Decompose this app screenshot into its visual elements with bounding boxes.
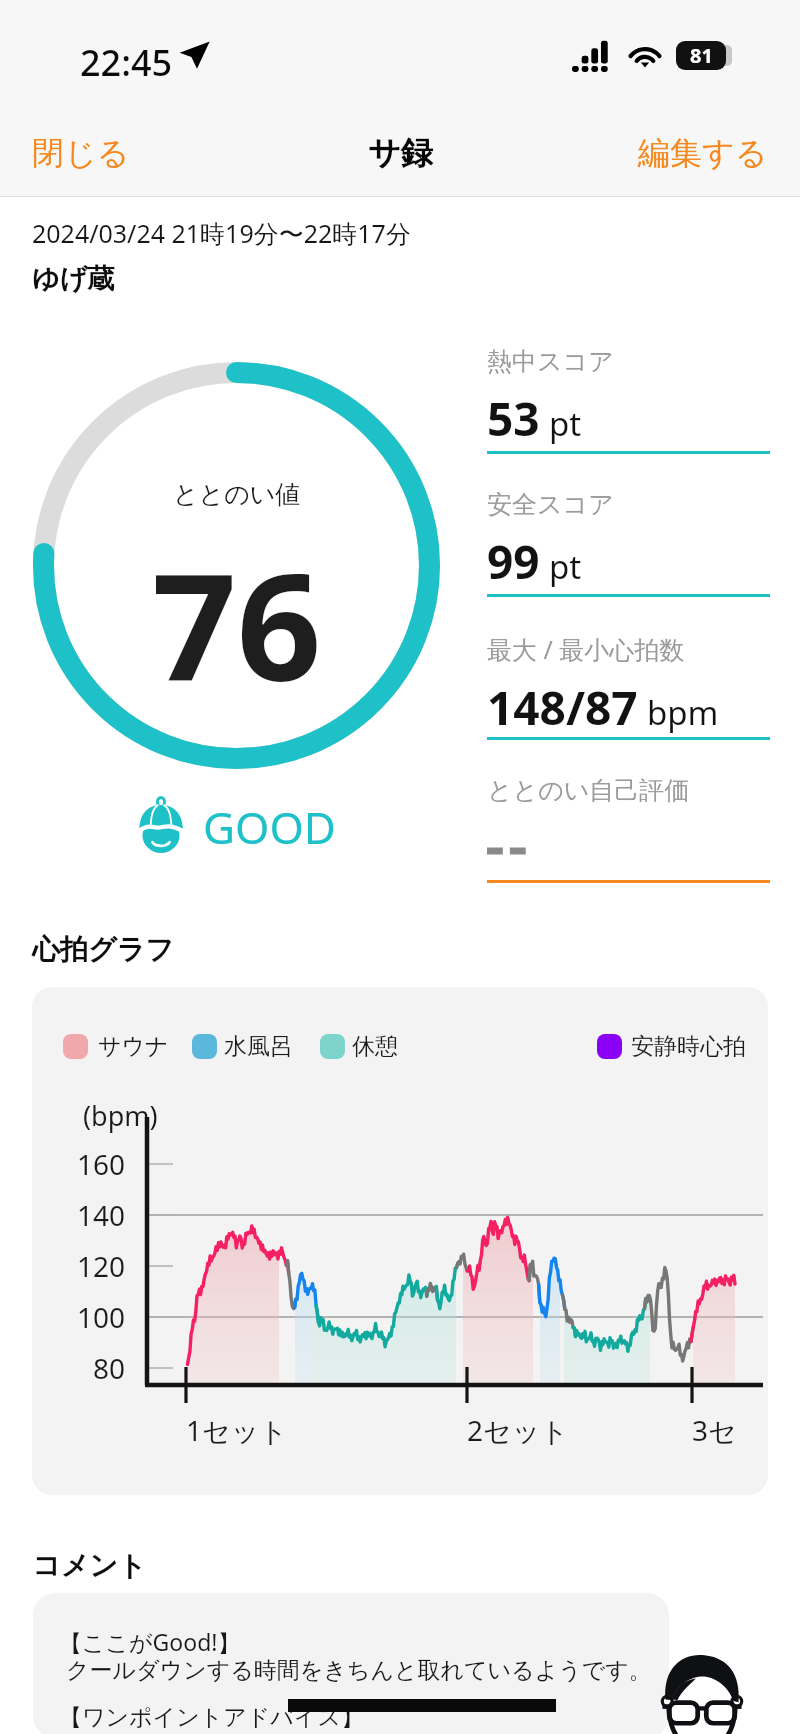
staticText: 99 [487, 530, 540, 593]
staticText: 【ワンポイントアドバイス】 [59, 1703, 364, 1732]
staticText: 最大 / 最小心拍数 [487, 632, 685, 666]
staticText: 水風呂 [224, 1032, 293, 1061]
button[interactable]: ととのい自己評価 [487, 775, 770, 883]
staticText: サウナ [98, 1032, 169, 1061]
staticText: 81 [690, 42, 713, 69]
staticText: 2セット [467, 1411, 569, 1449]
staticText: bpm [647, 690, 719, 735]
staticText: 3セ [692, 1411, 737, 1449]
staticText: 148/87 [487, 676, 638, 739]
staticText: pt [549, 401, 582, 446]
staticText: 閉じる [32, 133, 130, 173]
staticText: 【ここがGood!】 [59, 1626, 241, 1657]
staticText: 80 [93, 1349, 126, 1387]
staticText: 22:45 [80, 38, 173, 87]
staticText: 熱中スコア [487, 346, 614, 377]
staticText: GOOD [203, 797, 336, 857]
staticText: (bpm) [83, 1097, 158, 1134]
staticText: 安全スコア [487, 489, 614, 520]
staticText: 160 [77, 1145, 126, 1183]
staticText: ととのい自己評価 [487, 775, 690, 806]
button[interactable]: 閉じる [0, 117, 162, 189]
staticText: 安静時心拍 [631, 1032, 746, 1061]
staticText: 編集する [638, 133, 768, 173]
staticText: クールダウンする時間をきちんと取れているようです。 [66, 1656, 652, 1685]
staticText: 120 [77, 1247, 126, 1285]
button[interactable]: 編集する [606, 117, 800, 189]
staticText: 心拍グラフ [32, 932, 174, 967]
staticText: 76 [152, 523, 322, 725]
staticText: 53 [487, 387, 540, 450]
staticText: サ録 [368, 133, 433, 173]
button[interactable]: 熱中スコア [487, 346, 770, 454]
staticText: pt [549, 544, 582, 589]
staticText: 休憩 [352, 1032, 398, 1061]
button[interactable]: 最大 / 最小心拍数 [487, 632, 770, 740]
staticText: 2024/03/24 21時19分〜22時17分 [32, 216, 411, 250]
staticText: 1セット [186, 1411, 288, 1449]
button[interactable]: 安全スコア [487, 489, 770, 597]
staticText: ゆげ蔵 [32, 262, 115, 296]
staticText: コメント [32, 1548, 147, 1583]
staticText: ととのい値 [173, 479, 301, 510]
staticText: 140 [77, 1196, 126, 1234]
staticText: 100 [77, 1298, 126, 1336]
